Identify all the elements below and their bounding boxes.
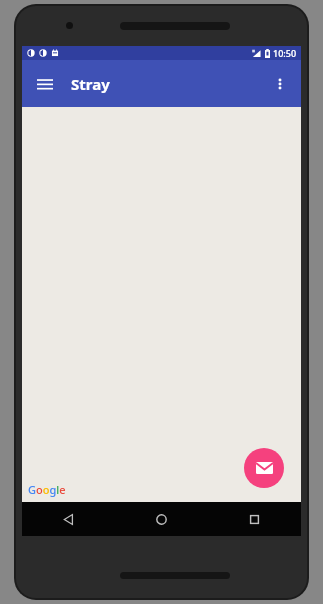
button[interactable]: Open navigation drawer — [28, 67, 62, 101]
staticText: Stray — [71, 74, 110, 94]
staticText: 10:50 — [273, 47, 297, 59]
button[interactable]: Compose message — [244, 448, 284, 488]
staticText: Google — [28, 482, 66, 497]
button[interactable]: More options — [263, 67, 297, 101]
button[interactable]: Recent apps — [208, 502, 301, 536]
button[interactable]: Home — [115, 502, 208, 536]
button[interactable]: Back — [22, 502, 115, 536]
